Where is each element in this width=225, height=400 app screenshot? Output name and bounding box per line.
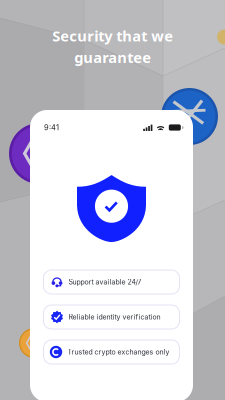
button[interactable]: Support available 24/7 (43, 270, 179, 294)
staticText: Trusted crypto exchanges only (67, 348, 169, 356)
staticText: Security that we guarantee (52, 26, 173, 67)
staticText: Support available 24/7 (68, 278, 141, 286)
staticText: Reliable identity verification (68, 313, 160, 321)
button[interactable]: Trusted crypto exchanges only (43, 340, 179, 364)
staticText: 9:41 (44, 123, 59, 132)
button[interactable]: Reliable identity verification (43, 305, 179, 329)
